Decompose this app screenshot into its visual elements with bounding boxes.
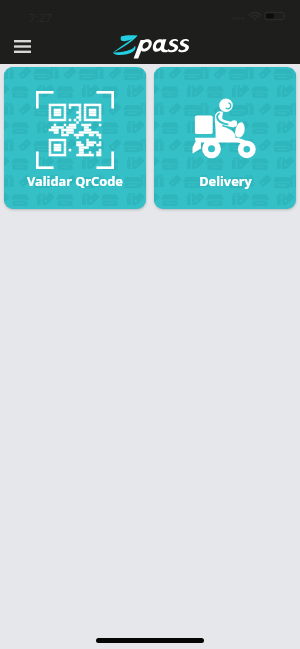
staticText: Delivery: [199, 172, 252, 189]
staticText: 7:27: [29, 10, 52, 26]
other: Zpass: [112, 33, 190, 59]
button[interactable]: Validar QrCode: [4, 67, 146, 209]
button[interactable]: Delivery: [154, 67, 296, 209]
staticText: Validar QrCode: [27, 172, 123, 189]
button[interactable]: Menu: [8, 32, 36, 60]
